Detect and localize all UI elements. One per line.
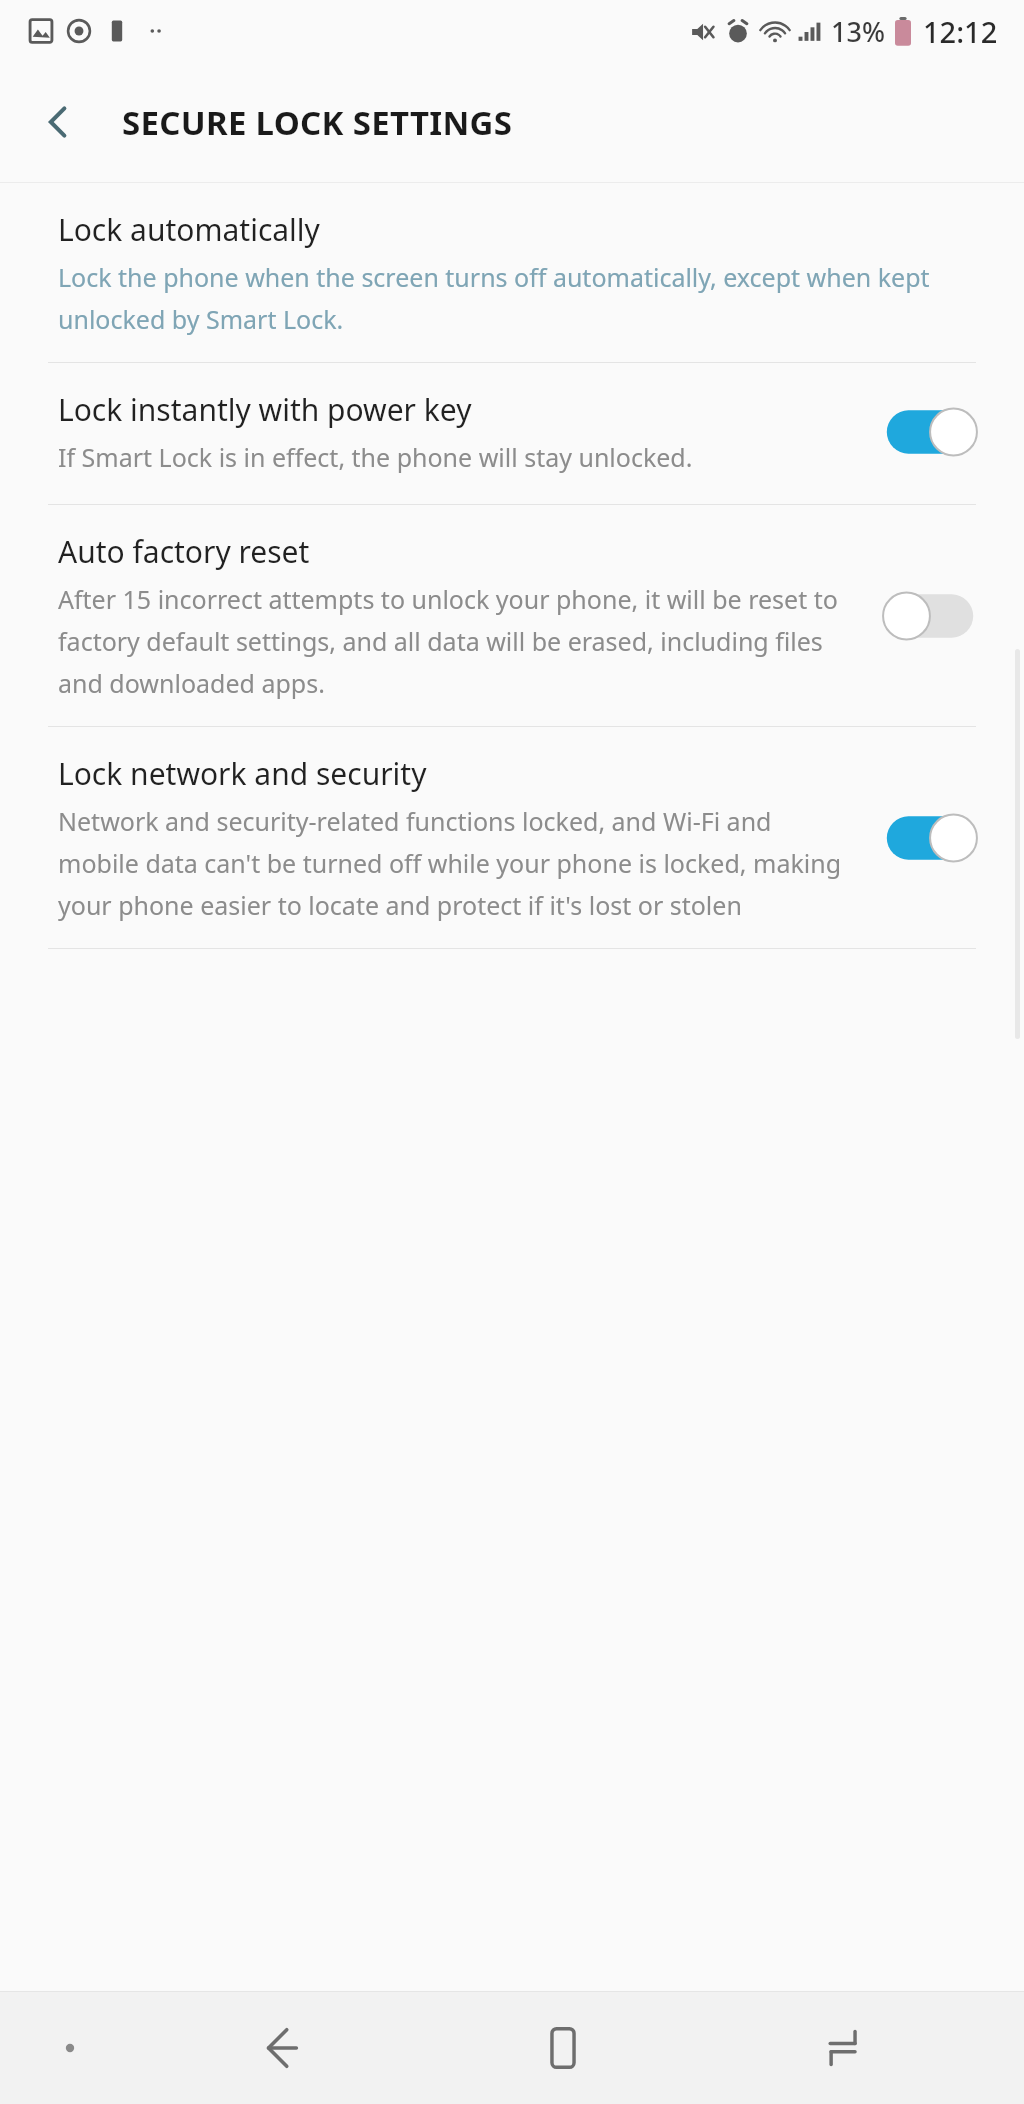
button[interactable]: Toggle on [876, 397, 984, 467]
staticText: Lock the phone when the screen turns off… [58, 260, 960, 336]
staticText: Network and security-related functions l… [58, 804, 852, 922]
staticText: Lock automatically [58, 209, 320, 250]
staticText: Lock instantly with power key [58, 389, 472, 430]
staticText: After 15 incorrect attempts to unlock yo… [58, 582, 852, 700]
button[interactable]: Auto factory reset [0, 505, 1024, 726]
staticText: 13% [831, 13, 885, 50]
button[interactable]: Toggle on [876, 803, 984, 873]
staticText: 12:12 [923, 12, 998, 51]
button[interactable]: Hide keyboard [0, 1992, 140, 2104]
button[interactable]: Lock network and security [0, 727, 1024, 948]
button[interactable]: Lock automatically [0, 183, 1024, 362]
button[interactable]: Home [422, 1992, 703, 2104]
staticText: Auto factory reset [58, 531, 310, 572]
staticText: Lock network and security [58, 753, 427, 794]
button[interactable]: Lock instantly with power key [0, 363, 1024, 504]
button[interactable]: Back [22, 86, 94, 158]
staticText: SECURE LOCK SETTINGS [122, 100, 513, 145]
button[interactable]: Toggle off [876, 581, 984, 651]
staticText: If Smart Lock is in effect, the phone wi… [58, 440, 693, 474]
button[interactable]: Back [140, 1992, 422, 2104]
button[interactable]: Recent apps [703, 1992, 984, 2104]
